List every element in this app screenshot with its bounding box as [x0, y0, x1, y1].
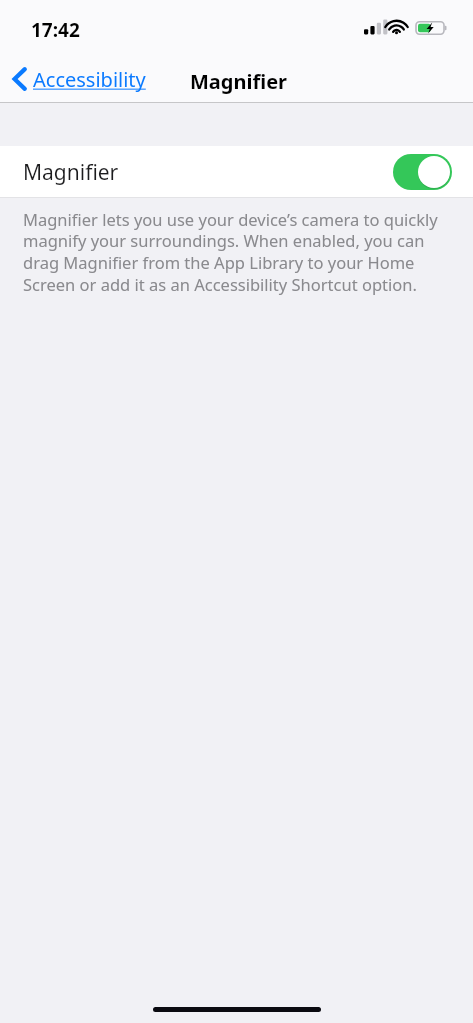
button[interactable]: Accessibility	[0, 55, 154, 103]
staticText: Magnifier lets you use your device’s cam…	[23, 208, 451, 296]
button[interactable]: Magnifier toggle, on	[393, 154, 452, 190]
staticText: Magnifier	[23, 158, 119, 187]
staticText: Accessibility	[33, 66, 146, 93]
staticText: Magnifier	[190, 68, 288, 95]
staticText: 17:42	[31, 17, 80, 43]
button[interactable]: Magnifier	[0, 146, 473, 198]
